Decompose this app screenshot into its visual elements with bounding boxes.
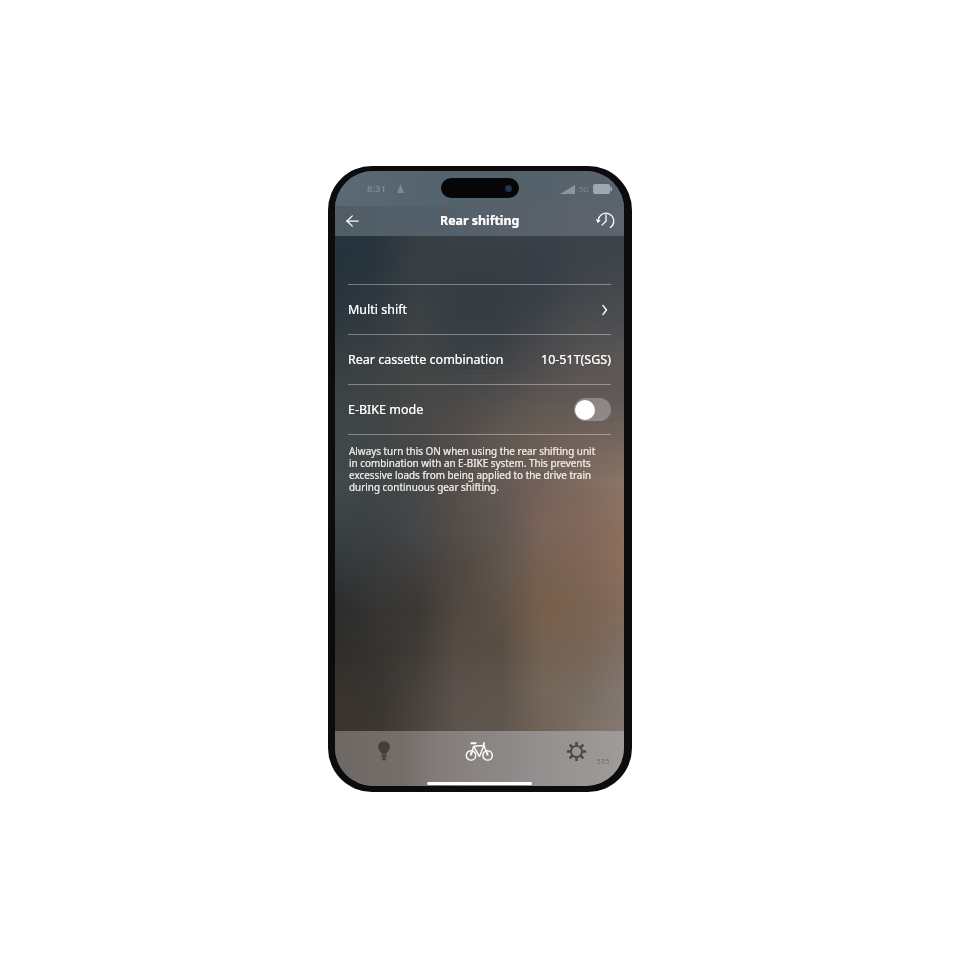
button[interactable]: Back bbox=[342, 210, 364, 232]
staticText: 10-51T(SGS) bbox=[541, 351, 611, 368]
staticText: Rear shifting bbox=[440, 212, 520, 229]
staticText: 5G bbox=[579, 184, 589, 194]
staticText: 8:31 bbox=[367, 182, 386, 195]
button[interactable]: Settings bbox=[528, 731, 624, 771]
staticText: Multi shift bbox=[348, 301, 408, 318]
button[interactable]: E-BIKE mode toggle bbox=[574, 398, 611, 421]
staticText: E-BIKE mode bbox=[348, 401, 424, 418]
button[interactable]: Bike bbox=[432, 731, 528, 771]
button[interactable]: Multi shift bbox=[335, 285, 624, 334]
staticText: Rear cassette combination bbox=[348, 351, 504, 368]
button[interactable]: E-BIKE mode bbox=[335, 385, 624, 434]
button[interactable]: History bbox=[596, 211, 616, 231]
button[interactable]: Rear cassette combination bbox=[335, 335, 624, 384]
staticText: 535 bbox=[597, 757, 611, 765]
staticText: Always turn this ON when using the rear … bbox=[349, 444, 600, 494]
button[interactable]: Light bbox=[335, 731, 432, 771]
